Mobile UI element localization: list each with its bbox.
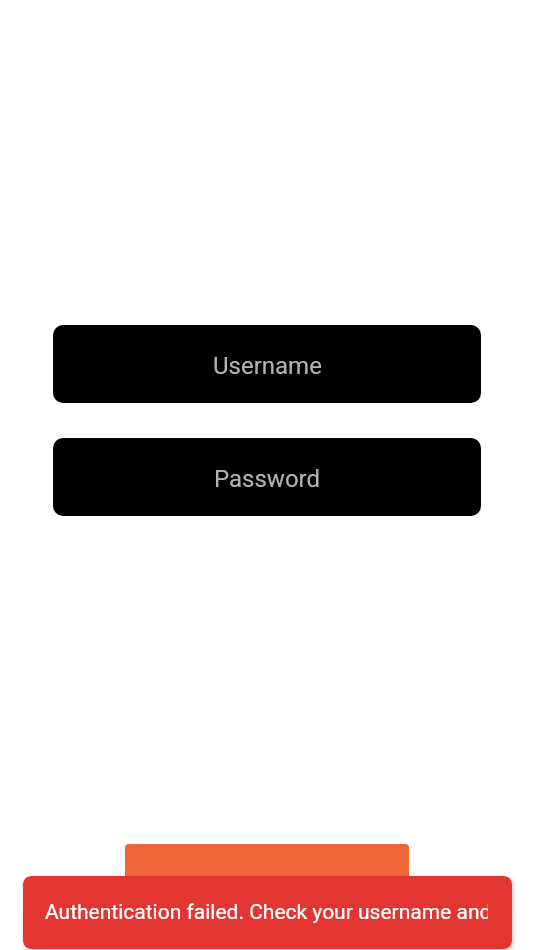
button[interactable]: Username: [53, 325, 481, 403]
button[interactable]: LOGIN: [125, 844, 409, 944]
staticText: LOGIN: [236, 881, 299, 907]
staticText: Password: [214, 465, 321, 493]
staticText: Username: [213, 352, 322, 380]
staticText: Authentication failed. Check your userna…: [45, 900, 488, 925]
button[interactable]: Password: [53, 438, 481, 516]
button[interactable]: Authentication failed. Check your userna…: [23, 876, 512, 949]
